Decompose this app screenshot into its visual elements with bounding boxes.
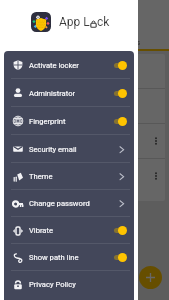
staticText: Privacy Policy <box>29 280 76 289</box>
staticText: Vibrate <box>29 226 54 235</box>
button[interactable]: Show path line <box>4 244 134 271</box>
button[interactable] <box>4 89 165 123</box>
button[interactable]: Change password <box>4 190 134 217</box>
button[interactable]: More options <box>151 171 161 181</box>
staticText: Security email <box>29 145 77 154</box>
button[interactable]: Add <box>139 266 162 289</box>
staticText: Show path line <box>29 253 79 262</box>
button[interactable]: Vibrate <box>4 217 134 244</box>
button[interactable]: Administrator <box>4 79 134 107</box>
staticText: Change password <box>29 199 90 208</box>
button[interactable] <box>4 54 165 88</box>
staticText: Theme <box>29 172 53 181</box>
staticText: Administrator <box>29 89 76 98</box>
button[interactable]: More options <box>151 136 161 146</box>
staticText: ck <box>97 15 110 29</box>
button[interactable]: More options <box>4 159 165 193</box>
button[interactable]: More options <box>4 124 165 158</box>
button[interactable]: Privacy Policy <box>4 271 134 298</box>
staticText: Activate locker <box>29 61 79 70</box>
button[interactable]: Fingerprint <box>4 107 134 135</box>
button[interactable]: Security email <box>4 135 134 163</box>
staticText: App L <box>59 15 90 29</box>
staticText: Apps <box>123 38 141 47</box>
staticText: Fingerprint <box>29 117 66 126</box>
button[interactable]: Theme <box>4 163 134 190</box>
button[interactable]: Activate locker <box>4 51 134 79</box>
